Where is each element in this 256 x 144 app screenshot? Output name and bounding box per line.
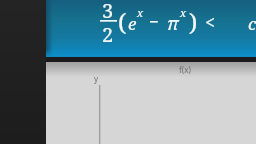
staticText: 2	[102, 21, 114, 48]
staticText: −	[149, 10, 159, 33]
staticText: π	[167, 11, 179, 36]
staticText: e	[128, 12, 137, 35]
staticText: c	[248, 12, 256, 35]
staticText: <	[205, 10, 216, 35]
staticText: f(x)	[179, 64, 191, 75]
staticText: (	[118, 5, 127, 38]
staticText: )	[189, 5, 198, 38]
staticText: x	[180, 5, 187, 20]
staticText: x	[137, 5, 144, 20]
button[interactable]: f(x)	[179, 64, 191, 75]
staticText: y	[94, 73, 99, 84]
staticText: 3	[102, 0, 114, 24]
